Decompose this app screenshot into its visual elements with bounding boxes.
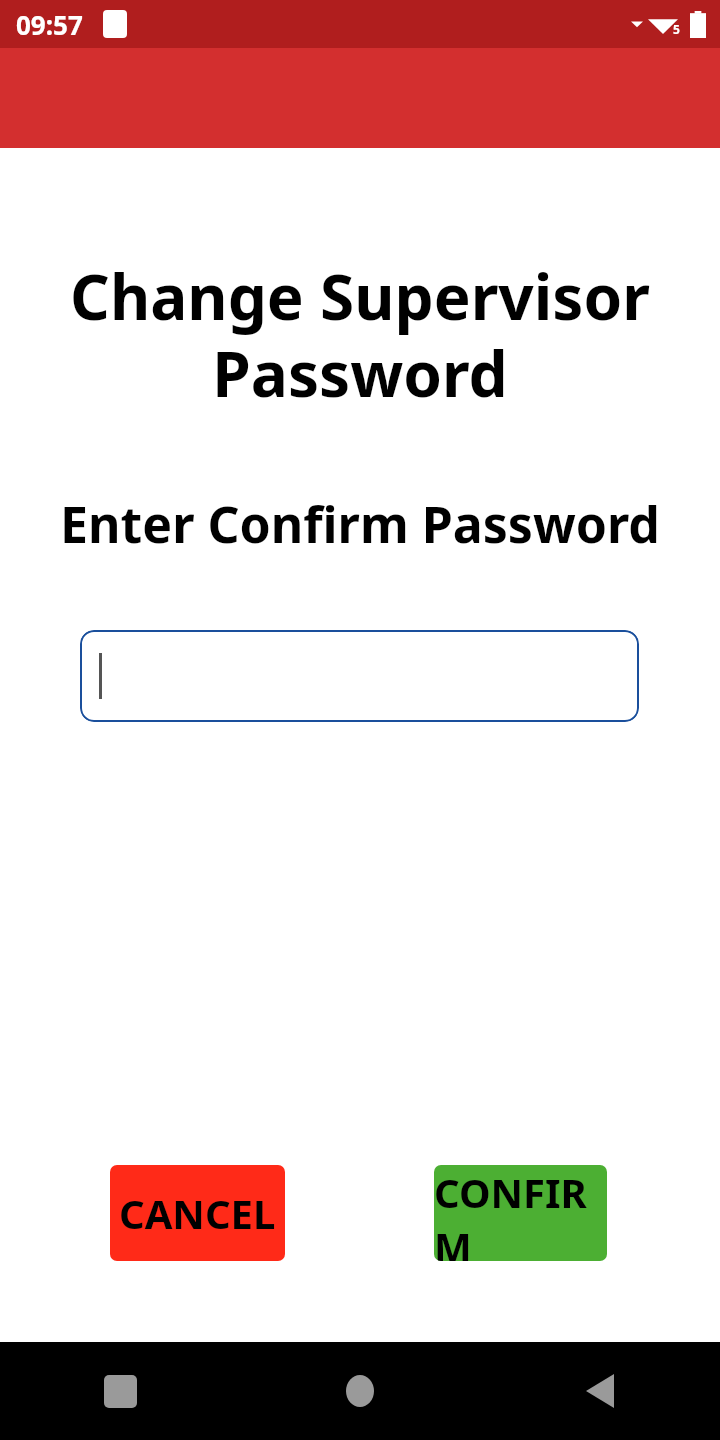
staticText: Enter Confirm Password (0, 490, 720, 558)
button[interactable]: Back (480, 1342, 720, 1440)
button[interactable] (80, 630, 639, 722)
button[interactable]: Home (240, 1342, 480, 1440)
button[interactable]: CANCEL (110, 1165, 285, 1261)
staticText: 09:57 (16, 7, 83, 42)
button[interactable]: CONFIRM (434, 1165, 607, 1261)
staticText: CANCEL (119, 1186, 276, 1240)
button[interactable]: Recents (0, 1342, 240, 1440)
staticText: Change Supervisor Password (44, 254, 676, 416)
staticText: 5 (673, 21, 680, 37)
staticText: CONFIRM (434, 1165, 607, 1261)
